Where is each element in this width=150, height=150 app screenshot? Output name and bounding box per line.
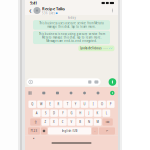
button[interactable]: R <box>54 101 62 108</box>
button[interactable]: N <box>85 118 93 126</box>
button[interactable]: E <box>46 101 54 108</box>
button[interactable]: Switch keyboard <box>28 91 32 95</box>
button[interactable]: Voice <box>110 91 114 95</box>
button[interactable]: I <box>89 101 97 108</box>
staticText: Looks delicious <box>80 47 101 50</box>
button[interactable]: L <box>102 109 110 117</box>
staticText: ‹ <box>29 5 32 16</box>
button[interactable]: K <box>94 109 101 117</box>
staticText: P <box>110 102 112 106</box>
button[interactable]: More options <box>110 6 115 15</box>
staticText: I <box>93 102 94 106</box>
button[interactable]: Hide keyboard <box>30 136 37 141</box>
staticText: ▾ <box>33 137 34 140</box>
button[interactable]: D <box>50 109 58 117</box>
staticText: K <box>97 111 99 115</box>
staticText: U <box>84 102 86 106</box>
button[interactable]: O <box>98 101 106 108</box>
staticText: ?123 <box>30 129 37 133</box>
staticText: W <box>40 102 42 106</box>
staticText: L <box>106 111 107 115</box>
staticText: H <box>79 111 81 115</box>
button[interactable]: V <box>68 118 75 126</box>
button[interactable]: F <box>59 109 67 117</box>
button[interactable]: H <box>76 109 84 117</box>
button[interactable]: X <box>50 118 58 126</box>
staticText: T <box>67 102 68 106</box>
staticText: S <box>45 111 46 115</box>
staticText: Z <box>44 120 46 124</box>
button[interactable]: Emoji <box>29 80 33 84</box>
button[interactable]: T <box>63 101 71 108</box>
staticText: . <box>94 129 95 133</box>
staticText: Today <box>67 16 75 19</box>
button[interactable]: ?123 <box>28 127 40 135</box>
button[interactable]: Send voice message <box>109 78 116 86</box>
staticText: O <box>101 102 103 106</box>
button[interactable]: P <box>107 101 115 108</box>
staticText: G <box>70 111 72 115</box>
staticText: ✓✓ <box>109 47 113 50</box>
button[interactable]: Shift <box>30 118 41 126</box>
button[interactable]: U <box>81 101 88 108</box>
staticText: D <box>53 111 55 115</box>
button[interactable]: This business uses a secure service from… <box>33 20 110 30</box>
staticText: Recipe Talks <box>42 6 65 11</box>
button[interactable]: B <box>76 118 84 126</box>
button[interactable]: G <box>68 109 75 117</box>
button[interactable]: Y <box>72 101 80 108</box>
staticText: Q <box>31 102 33 106</box>
staticText: C <box>62 120 64 124</box>
button[interactable]: Z <box>41 118 49 126</box>
button[interactable]: M <box>94 118 101 126</box>
staticText: ⌫ <box>106 120 110 123</box>
button[interactable]: Emoji keyboard <box>41 127 47 135</box>
button[interactable]: Attach <box>88 80 91 84</box>
button[interactable]: Clipboard <box>42 92 45 94</box>
staticText: B <box>79 120 81 124</box>
button[interactable]: English (US) <box>48 127 91 135</box>
button[interactable]: J <box>85 109 93 117</box>
staticText: A <box>36 111 38 115</box>
staticText: This business uses a secure service from… <box>39 21 104 28</box>
staticText: This business is now using a secure serv… <box>38 32 104 43</box>
staticText: V <box>70 120 72 124</box>
staticText: J <box>88 111 89 115</box>
button[interactable]: Back <box>27 6 33 15</box>
button[interactable]: . <box>92 127 98 135</box>
button[interactable]: Recipe Talks <box>33 6 76 15</box>
staticText: Y <box>75 102 77 106</box>
button[interactable]: This business is now using a secure serv… <box>33 31 110 44</box>
staticText: X <box>53 120 55 124</box>
button[interactable]: W <box>37 101 45 108</box>
button[interactable]: C <box>59 118 67 126</box>
staticText: N <box>88 120 90 124</box>
button[interactable]: Q <box>28 101 36 108</box>
staticText: F <box>62 111 63 115</box>
staticText: ⇧ <box>34 120 37 124</box>
staticText: R <box>57 102 59 106</box>
staticText: ↵ <box>106 129 108 132</box>
button[interactable]: Return <box>99 127 115 135</box>
button[interactable]: S <box>41 109 49 117</box>
staticText: 9:41 <box>30 0 37 6</box>
button[interactable]: Camera <box>91 80 98 84</box>
staticText: M <box>97 120 99 124</box>
staticText: 7:20 PM <box>102 47 107 49</box>
button[interactable]: A <box>33 109 41 117</box>
staticText: E <box>49 102 50 106</box>
button[interactable]: Search <box>83 92 86 94</box>
staticText: English (US) <box>61 129 77 133</box>
button[interactable]: Delete <box>102 118 113 126</box>
staticText: 536 Likes <box>42 11 55 15</box>
